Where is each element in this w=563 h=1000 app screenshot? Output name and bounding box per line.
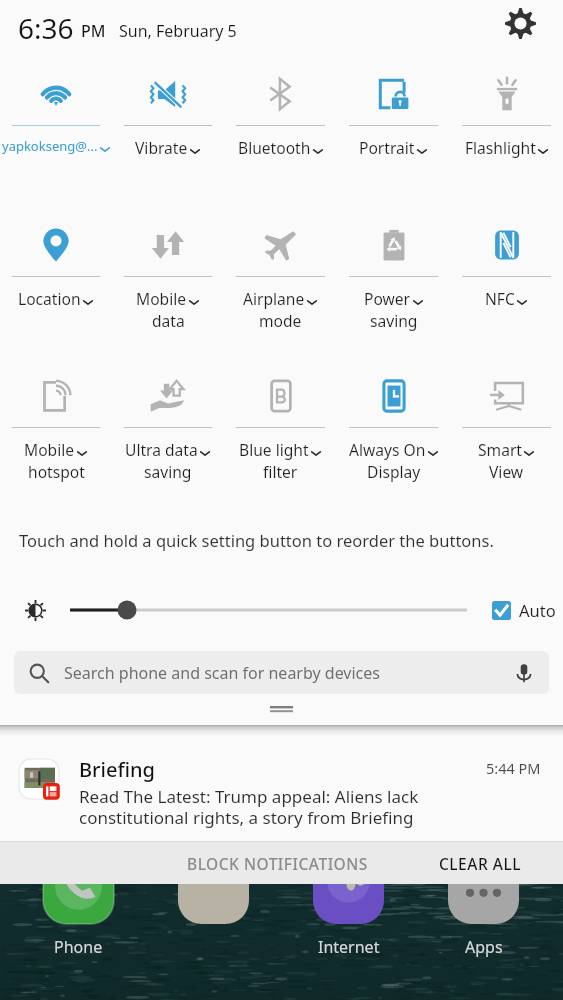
staticText: Sun, February 5 [119, 20, 237, 42]
staticText: Phone [54, 936, 103, 958]
staticText: Search phone and scan for nearby devices [64, 662, 380, 684]
button[interactable]: BLOCK NOTIFICATIONS [175, 844, 380, 883]
staticText: Mobile [24, 439, 75, 460]
staticText: 6:36 [18, 9, 74, 47]
button[interactable]: Search phone and scan for nearby devices [14, 651, 549, 694]
button[interactable]: Voice search [509, 658, 539, 688]
staticText: Mobile [136, 288, 187, 309]
button[interactable]: CLEAR ALL [427, 844, 533, 883]
button[interactable]: yapkokseng@... [0, 56, 112, 207]
staticText: Read The Latest: Trump appeal: Aliens la… [79, 785, 419, 829]
staticText: BLOCK NOTIFICATIONS [187, 853, 368, 874]
button[interactable]: Phone [43, 853, 114, 958]
button[interactable]: Settings [496, 0, 544, 48]
button[interactable]: Vibrate [112, 56, 224, 207]
staticText: yapkokseng@... [2, 137, 98, 155]
staticText: CLEAR ALL [439, 853, 521, 874]
staticText: Bluetooth [238, 137, 311, 158]
staticText: NFC [485, 288, 515, 309]
button[interactable]: Power saving [337, 207, 450, 358]
staticText: Location [18, 288, 81, 309]
button[interactable]: Briefing [0, 736, 563, 841]
staticText: Briefing [79, 756, 155, 783]
staticText: PM [81, 20, 106, 42]
button[interactable]: Mobile hotspot [0, 358, 112, 509]
staticText: Display [367, 461, 421, 482]
button[interactable]: Portrait [337, 56, 450, 207]
staticText: View [489, 461, 524, 482]
button[interactable]: Brightness slider [70, 597, 467, 623]
staticText: Portrait [359, 137, 415, 158]
staticText: Vibrate [135, 137, 188, 158]
button[interactable]: Flashlight [450, 56, 563, 207]
staticText: mode [259, 310, 302, 331]
button[interactable]: Ultra data saving [112, 358, 224, 509]
staticText: hotspot [28, 461, 85, 482]
button[interactable]: Bluetooth [224, 56, 337, 207]
staticText: 5:44 PM [486, 758, 541, 778]
staticText: Power [364, 288, 411, 309]
staticText: Smart [478, 439, 522, 460]
button[interactable]: Blue light filter [224, 358, 337, 509]
button[interactable]: Auto [492, 599, 556, 621]
button[interactable]: App [178, 853, 249, 936]
staticText: Internet [318, 936, 380, 958]
button[interactable]: Smart View [450, 358, 563, 509]
staticText: Apps [465, 936, 503, 958]
staticText: saving [370, 310, 418, 331]
staticText: data [152, 310, 185, 331]
staticText: Ultra data [125, 439, 198, 460]
button[interactable]: Always On Display [337, 358, 450, 509]
button[interactable]: Airplane mode [224, 207, 337, 358]
staticText: Auto [519, 599, 556, 621]
button[interactable]: Location [0, 207, 112, 358]
staticText: saving [144, 461, 192, 482]
staticText: Always On [349, 439, 426, 460]
staticText: Blue light [239, 439, 309, 460]
button[interactable]: Mobile data [112, 207, 224, 358]
other: Brightness [25, 600, 46, 621]
button[interactable]: Internet [313, 853, 384, 958]
button[interactable]: Apps [448, 853, 519, 958]
staticText: Touch and hold a quick setting button to… [19, 529, 494, 551]
staticText: Flashlight [465, 137, 536, 158]
button[interactable]: NFC [450, 207, 563, 358]
staticText: Airplane [243, 288, 305, 309]
staticText: filter [263, 461, 298, 482]
